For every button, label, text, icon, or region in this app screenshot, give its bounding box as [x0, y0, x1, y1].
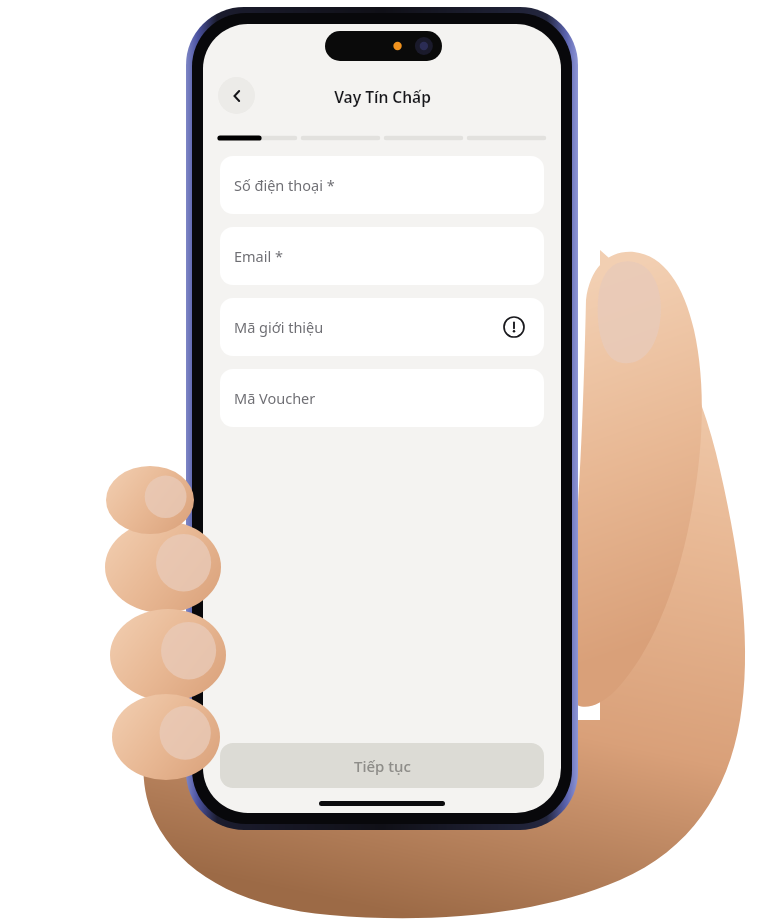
staticText: Mã giới thiệu — [234, 317, 324, 337]
button[interactable]: Referral code info — [503, 316, 525, 338]
staticText: Số điện thoại * — [234, 175, 335, 195]
button[interactable]: Số điện thoại * — [220, 156, 544, 214]
button[interactable]: Email * — [220, 227, 544, 285]
button[interactable]: Mã giới thiệu — [220, 298, 544, 356]
staticText: Email * — [234, 246, 283, 266]
button[interactable]: Tiếp tục — [220, 743, 544, 788]
staticText: Mã Voucher — [234, 388, 316, 408]
button[interactable]: Back — [218, 77, 255, 114]
button[interactable]: Mã Voucher — [220, 369, 544, 427]
staticText: Vay Tín Chấp — [334, 86, 431, 107]
staticText: Tiếp tục — [354, 756, 411, 776]
